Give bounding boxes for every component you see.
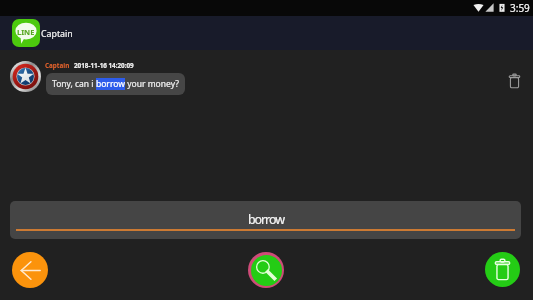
button[interactable]: borrow bbox=[10, 201, 521, 239]
staticText: borrow bbox=[248, 211, 284, 228]
button[interactable]: Back bbox=[12, 252, 48, 288]
staticText: 2018-11-16 14:20:09 bbox=[74, 61, 134, 70]
staticText: your money? bbox=[125, 78, 179, 90]
staticText: borrow bbox=[96, 78, 125, 90]
staticText: Captain bbox=[45, 61, 70, 70]
staticText: 3:59 bbox=[510, 1, 530, 15]
button[interactable]: Delete bbox=[485, 252, 520, 287]
button[interactable]: Search bbox=[248, 252, 284, 288]
staticText: LINE bbox=[17, 27, 35, 37]
button[interactable]: Tony, can i bbox=[46, 73, 185, 95]
button[interactable]: Delete message bbox=[503, 70, 525, 92]
button[interactable]: LINE bbox=[12, 19, 73, 47]
staticText: Captain bbox=[41, 28, 73, 40]
staticText: Tony, can i bbox=[52, 78, 96, 90]
